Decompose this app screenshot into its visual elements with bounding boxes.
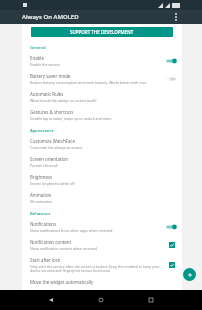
staticText: Screen orientation [30,156,68,162]
button[interactable]: Automatic Rules [22,88,182,106]
staticText: Move the widget automatically [30,279,94,285]
staticText: Enable the service [30,62,60,67]
button[interactable]: Gestures & shortcuts [22,106,182,124]
staticText: Always On AMOLED [22,13,79,21]
staticText: Show notification content when received [30,246,97,251]
button[interactable]: Brightness [22,171,182,189]
staticText: Behaviour [30,211,51,217]
button[interactable]: Move the widget automatically [22,276,182,290]
button[interactable]: Toggle [165,75,177,83]
button[interactable]: Add [183,268,196,281]
button[interactable]: Toggle [165,223,177,231]
button[interactable]: Animation [22,189,182,207]
staticText: Customize WatchFace [30,138,75,144]
staticText: Double tap to wake, swipe up to unlock a… [30,116,112,121]
staticText: Screen brightness while off [30,181,75,186]
staticText: Brightness [30,174,53,180]
staticText: Start after lock [30,257,61,263]
button[interactable]: Home [95,294,107,306]
button[interactable]: Checkbox [167,240,177,250]
button[interactable]: Enable [22,52,182,70]
button[interactable]: Notification content [22,236,182,254]
staticText: Portrait (Vertical) [30,163,58,168]
button[interactable]: More options [170,11,182,23]
staticText: Appearance [30,128,54,134]
button[interactable]: Back [45,294,57,306]
staticText: Show notifications from other apps when … [30,228,113,233]
staticText: Battery saver mode [30,73,71,79]
staticText: Gestures & shortcuts [30,109,74,115]
button[interactable]: Battery saver mode [22,70,182,88]
button[interactable]: Customize WatchFace [22,135,182,153]
staticText: Only start the service after the screen … [30,264,167,273]
staticText: Notification content [30,239,71,245]
staticText: What should the always on screen work? [30,98,97,103]
button[interactable]: Screen orientation [22,153,182,171]
staticText: General [30,45,46,51]
button[interactable]: Recents [145,294,157,306]
staticText: No animation [30,199,53,204]
staticText: Notifications [30,221,57,227]
button[interactable]: Notifications [22,218,182,236]
staticText: Customize the always on screen [30,145,83,150]
button[interactable]: Toggle [165,57,177,65]
button[interactable]: Checkbox [167,260,177,270]
staticText: SUPPORT THE DEVELOPMENT [70,29,134,35]
button[interactable]: Start after lock [22,254,182,276]
staticText: Reduce battery consumption and crash bat… [30,80,146,85]
staticText: Automatic Rules [30,91,64,97]
staticText: Enable [30,55,44,61]
button[interactable]: SUPPORT THE DEVELOPMENT [31,27,173,37]
staticText: Animation [30,192,52,198]
